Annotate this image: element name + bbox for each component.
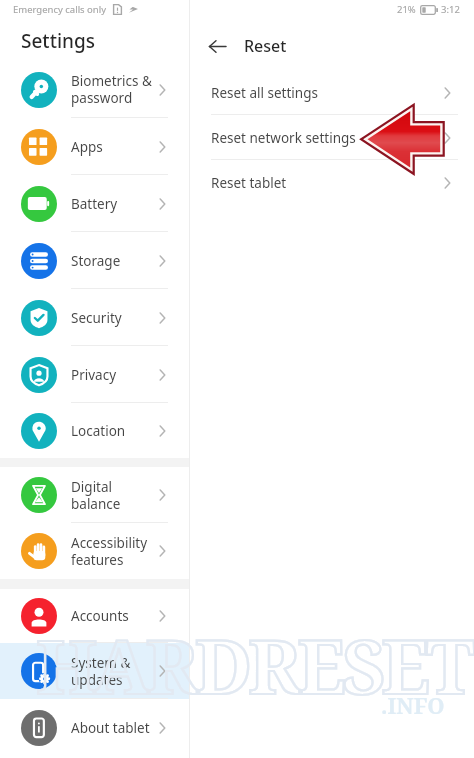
staticText: Emergency calls only [13, 3, 107, 16]
button[interactable]: Biometrics & password [0, 61, 189, 118]
staticText: About tablet [71, 719, 150, 737]
staticText: Accounts [71, 607, 129, 625]
staticText: Reset network settings [211, 129, 444, 147]
button[interactable]: Privacy [0, 346, 189, 403]
staticText: Digital balance [71, 478, 121, 513]
staticText: Privacy [71, 366, 117, 384]
staticText: Reset all settings [211, 84, 444, 102]
button[interactable]: Location [0, 403, 189, 458]
staticText: System & updates [71, 654, 131, 689]
staticText: Settings [21, 28, 95, 54]
button[interactable]: Reset network settings [190, 116, 474, 160]
button[interactable]: Battery [0, 175, 189, 232]
button[interactable]: Reset all settings [190, 71, 474, 115]
staticText: Battery [71, 195, 118, 213]
staticText: Apps [71, 138, 103, 156]
staticText: .INFO [381, 690, 445, 720]
button[interactable]: Apps [0, 118, 189, 175]
staticText: Accessibility features [71, 534, 148, 569]
button[interactable]: Accessibility features [0, 523, 189, 579]
button[interactable]: About tablet [0, 699, 189, 756]
button[interactable]: Back [206, 35, 228, 57]
staticText: HARDRESET [36, 614, 471, 716]
staticText: 21% [397, 3, 416, 16]
button[interactable]: Reset tablet [190, 161, 474, 205]
button[interactable]: Accounts [0, 589, 189, 643]
staticText: Storage [71, 252, 121, 270]
staticText: Biometrics & password [71, 72, 152, 107]
staticText: Location [71, 422, 126, 440]
staticText: 3:12 [441, 3, 460, 16]
staticText: Security [71, 309, 122, 327]
button[interactable]: System & updates [0, 643, 189, 699]
button[interactable]: Security [0, 289, 189, 346]
button[interactable]: Storage [0, 232, 189, 289]
staticText: Reset [244, 35, 287, 57]
staticText: Reset tablet [211, 174, 444, 192]
other: Pointer [0, 0, 474, 758]
button[interactable]: Digital balance [0, 467, 189, 523]
